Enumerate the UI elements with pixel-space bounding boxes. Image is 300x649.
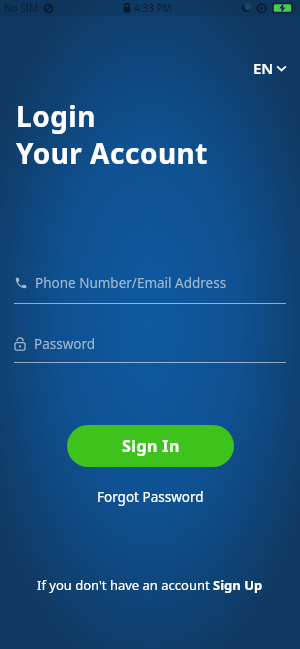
staticText: Sign In	[122, 435, 180, 457]
staticText: Phone Number/Email Address	[35, 274, 227, 292]
button[interactable]: Password	[14, 335, 286, 353]
staticText: Password	[34, 335, 96, 353]
staticText: Login Your Account	[16, 97, 208, 172]
button[interactable]: If you don't have an account Sign Up	[37, 576, 263, 594]
staticText: No SIM	[4, 1, 39, 15]
button[interactable]: EN	[253, 58, 287, 78]
staticText: EN	[253, 58, 274, 78]
staticText: 4:33 PM	[134, 1, 172, 15]
button[interactable]: Phone Number/Email Address	[14, 274, 286, 292]
button[interactable]: Sign In	[67, 425, 234, 467]
button[interactable]: Forgot Password	[97, 488, 204, 506]
